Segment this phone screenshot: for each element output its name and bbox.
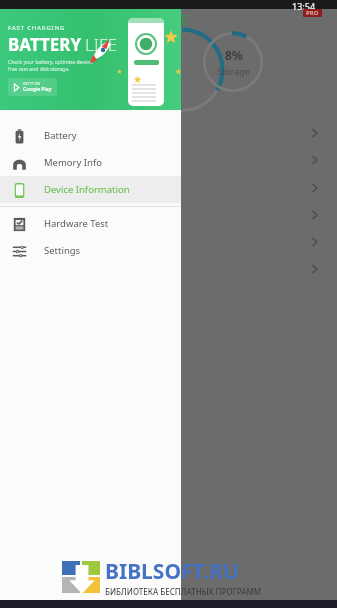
button[interactable]: Open detail bbox=[300, 231, 330, 253]
button[interactable]: Open detail bbox=[300, 122, 330, 144]
button[interactable]: Open detail bbox=[300, 177, 330, 199]
staticText: LIFE bbox=[85, 33, 118, 56]
staticText: 8% bbox=[225, 47, 243, 63]
staticText: GET IT ON bbox=[23, 81, 40, 86]
staticText: BATTERY bbox=[8, 33, 82, 56]
button[interactable]: Open detail bbox=[300, 258, 330, 280]
staticText: E bbox=[181, 9, 190, 29]
button[interactable]: Memory Info bbox=[0, 149, 181, 176]
staticText: Settings bbox=[44, 244, 81, 257]
button[interactable]: Hardware Test bbox=[0, 210, 181, 237]
staticText: Storage bbox=[217, 65, 250, 77]
button[interactable]: Open detail bbox=[300, 149, 330, 171]
staticText: БИБЛИОТЕКА БЕСПЛАТНЫХ ПРОГРАММ bbox=[105, 586, 262, 597]
staticText: Google Play bbox=[23, 86, 52, 93]
button[interactable]: GET IT ON bbox=[8, 78, 57, 96]
button[interactable]: Device Information bbox=[0, 176, 181, 203]
staticText: Memory Info bbox=[44, 156, 102, 169]
staticText: Battery bbox=[44, 129, 77, 142]
staticText: Device Information bbox=[44, 183, 130, 196]
button[interactable]: Settings bbox=[0, 237, 181, 264]
staticText: Check your battery, optimise device, fre… bbox=[8, 59, 93, 73]
staticText: 13:54 bbox=[292, 0, 316, 12]
staticText: FAST CHARGING bbox=[8, 24, 66, 32]
button[interactable]: Battery bbox=[0, 122, 181, 149]
button[interactable]: Open detail bbox=[300, 204, 330, 226]
staticText: Hardware Test bbox=[44, 217, 109, 230]
staticText: PRO bbox=[306, 9, 319, 17]
staticText: BIBLSOFT.RU bbox=[105, 557, 239, 586]
button[interactable]: Battery Life ad bbox=[0, 9, 181, 110]
